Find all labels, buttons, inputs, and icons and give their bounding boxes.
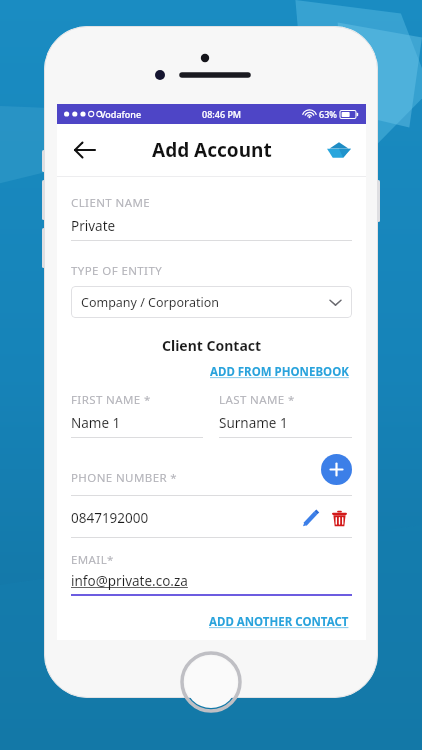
button[interactable]: Edit phone number — [297, 505, 323, 531]
staticText: 63% — [319, 108, 337, 120]
staticText: Add Account — [152, 137, 272, 163]
staticText: PHONE NUMBER * — [71, 470, 178, 486]
button[interactable]: 0847192000 — [71, 509, 297, 527]
staticText: ADD ANOTHER CONTACT — [209, 614, 352, 630]
staticText: EMAIL* — [71, 552, 114, 568]
staticText: 0847192000 — [71, 509, 149, 527]
button[interactable]: Add phone number — [321, 454, 352, 485]
staticText: Company / Corporation — [81, 294, 219, 311]
button[interactable]: ADD FROM PHONEBOOK — [210, 364, 352, 380]
staticText: ADD FROM PHONEBOOK — [210, 364, 352, 380]
staticText: LAST NAME * — [219, 392, 295, 408]
button[interactable]: Private — [71, 217, 352, 241]
button[interactable]: App logo — [322, 133, 356, 167]
staticText: TYPE OF ENTITY — [71, 263, 163, 279]
staticText: Vodafone — [100, 108, 142, 120]
staticText: 08:46 PM — [202, 108, 242, 120]
button[interactable]: Delete phone number — [326, 505, 352, 531]
staticText: Surname 1 — [219, 414, 288, 432]
button[interactable]: LAST NAME * — [219, 392, 352, 438]
staticText: Client Contact — [162, 336, 262, 355]
button[interactable]: Company / Corporation — [71, 286, 352, 318]
staticText: Private — [71, 217, 116, 235]
staticText: Name 1 — [71, 414, 121, 432]
button[interactable]: ADD ANOTHER CONTACT — [209, 614, 352, 630]
button[interactable]: info@private.co.za — [71, 572, 352, 596]
staticText: CLIENT NAME — [71, 195, 151, 211]
button[interactable]: Back — [67, 132, 103, 168]
staticText: FIRST NAME * — [71, 392, 151, 408]
staticText: info@private.co.za — [71, 572, 188, 590]
button[interactable]: FIRST NAME * — [71, 392, 203, 438]
